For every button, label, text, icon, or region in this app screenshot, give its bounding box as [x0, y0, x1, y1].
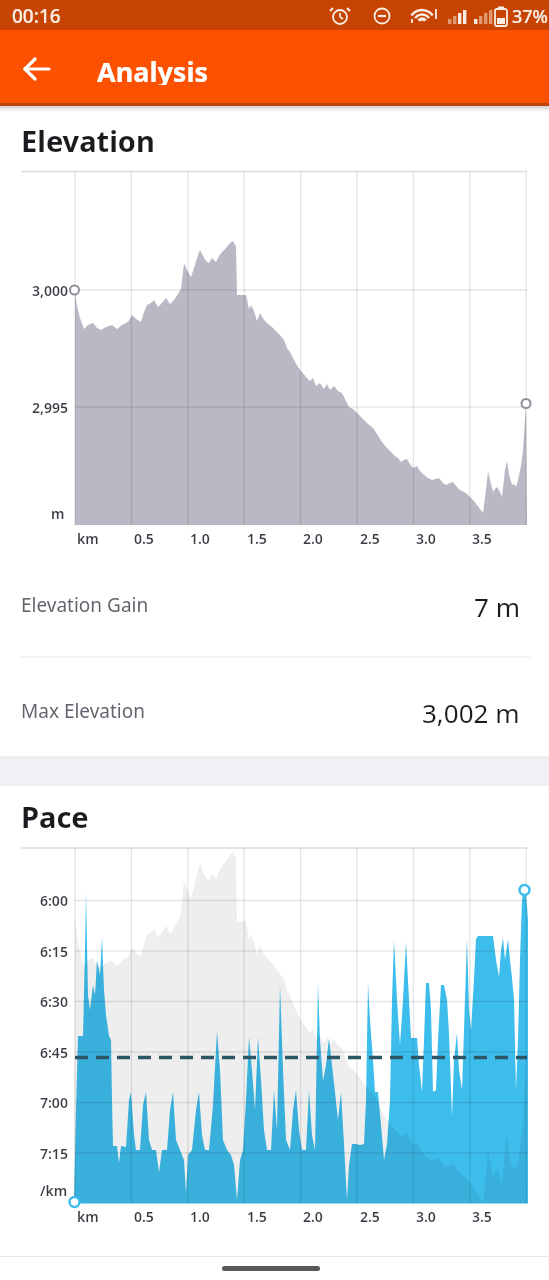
button[interactable]: Max Elevation	[0, 659, 549, 755]
staticText: km	[77, 529, 99, 548]
button[interactable]: Elevation Gain	[0, 557, 549, 655]
staticText: 1.5	[247, 529, 267, 548]
staticText: 2.5	[360, 529, 380, 548]
staticText: 7 m	[474, 589, 520, 621]
staticText: 37%	[512, 4, 548, 29]
staticText: km	[77, 1207, 99, 1226]
staticText: 0.5	[134, 529, 154, 548]
staticText: 1.5	[247, 1207, 267, 1226]
staticText: 3.5	[472, 529, 492, 548]
staticText: Max Elevation	[21, 698, 145, 724]
staticText: Pace	[21, 797, 89, 829]
staticText: 6:00	[40, 891, 68, 910]
staticText: 7:15	[40, 1144, 68, 1163]
staticText: Analysis	[97, 53, 209, 85]
staticText: 1.0	[190, 529, 210, 548]
staticText: 1.0	[190, 1207, 210, 1226]
staticText: 3,000	[32, 281, 68, 300]
staticText: m	[51, 504, 65, 523]
staticText: Elevation Gain	[21, 592, 149, 618]
staticText: 6:30	[40, 992, 68, 1011]
staticText: 0.5	[134, 1207, 154, 1226]
staticText: 2.0	[303, 529, 323, 548]
staticText: 3.5	[472, 1207, 492, 1226]
staticText: /km	[40, 1181, 68, 1200]
staticText: 2.5	[360, 1207, 380, 1226]
staticText: 2.0	[303, 1207, 323, 1226]
staticText: Elevation	[21, 121, 155, 153]
staticText: 2,995	[32, 398, 68, 417]
button[interactable]	[10, 40, 64, 94]
staticText: 3,002 m	[422, 695, 520, 727]
staticText: 6:15	[40, 942, 68, 961]
staticText: 7:00	[40, 1093, 68, 1112]
staticText: 3.0	[416, 529, 436, 548]
staticText: 6:45	[40, 1043, 68, 1062]
staticText: 3.0	[416, 1207, 436, 1226]
staticText: 00:16	[12, 3, 61, 29]
